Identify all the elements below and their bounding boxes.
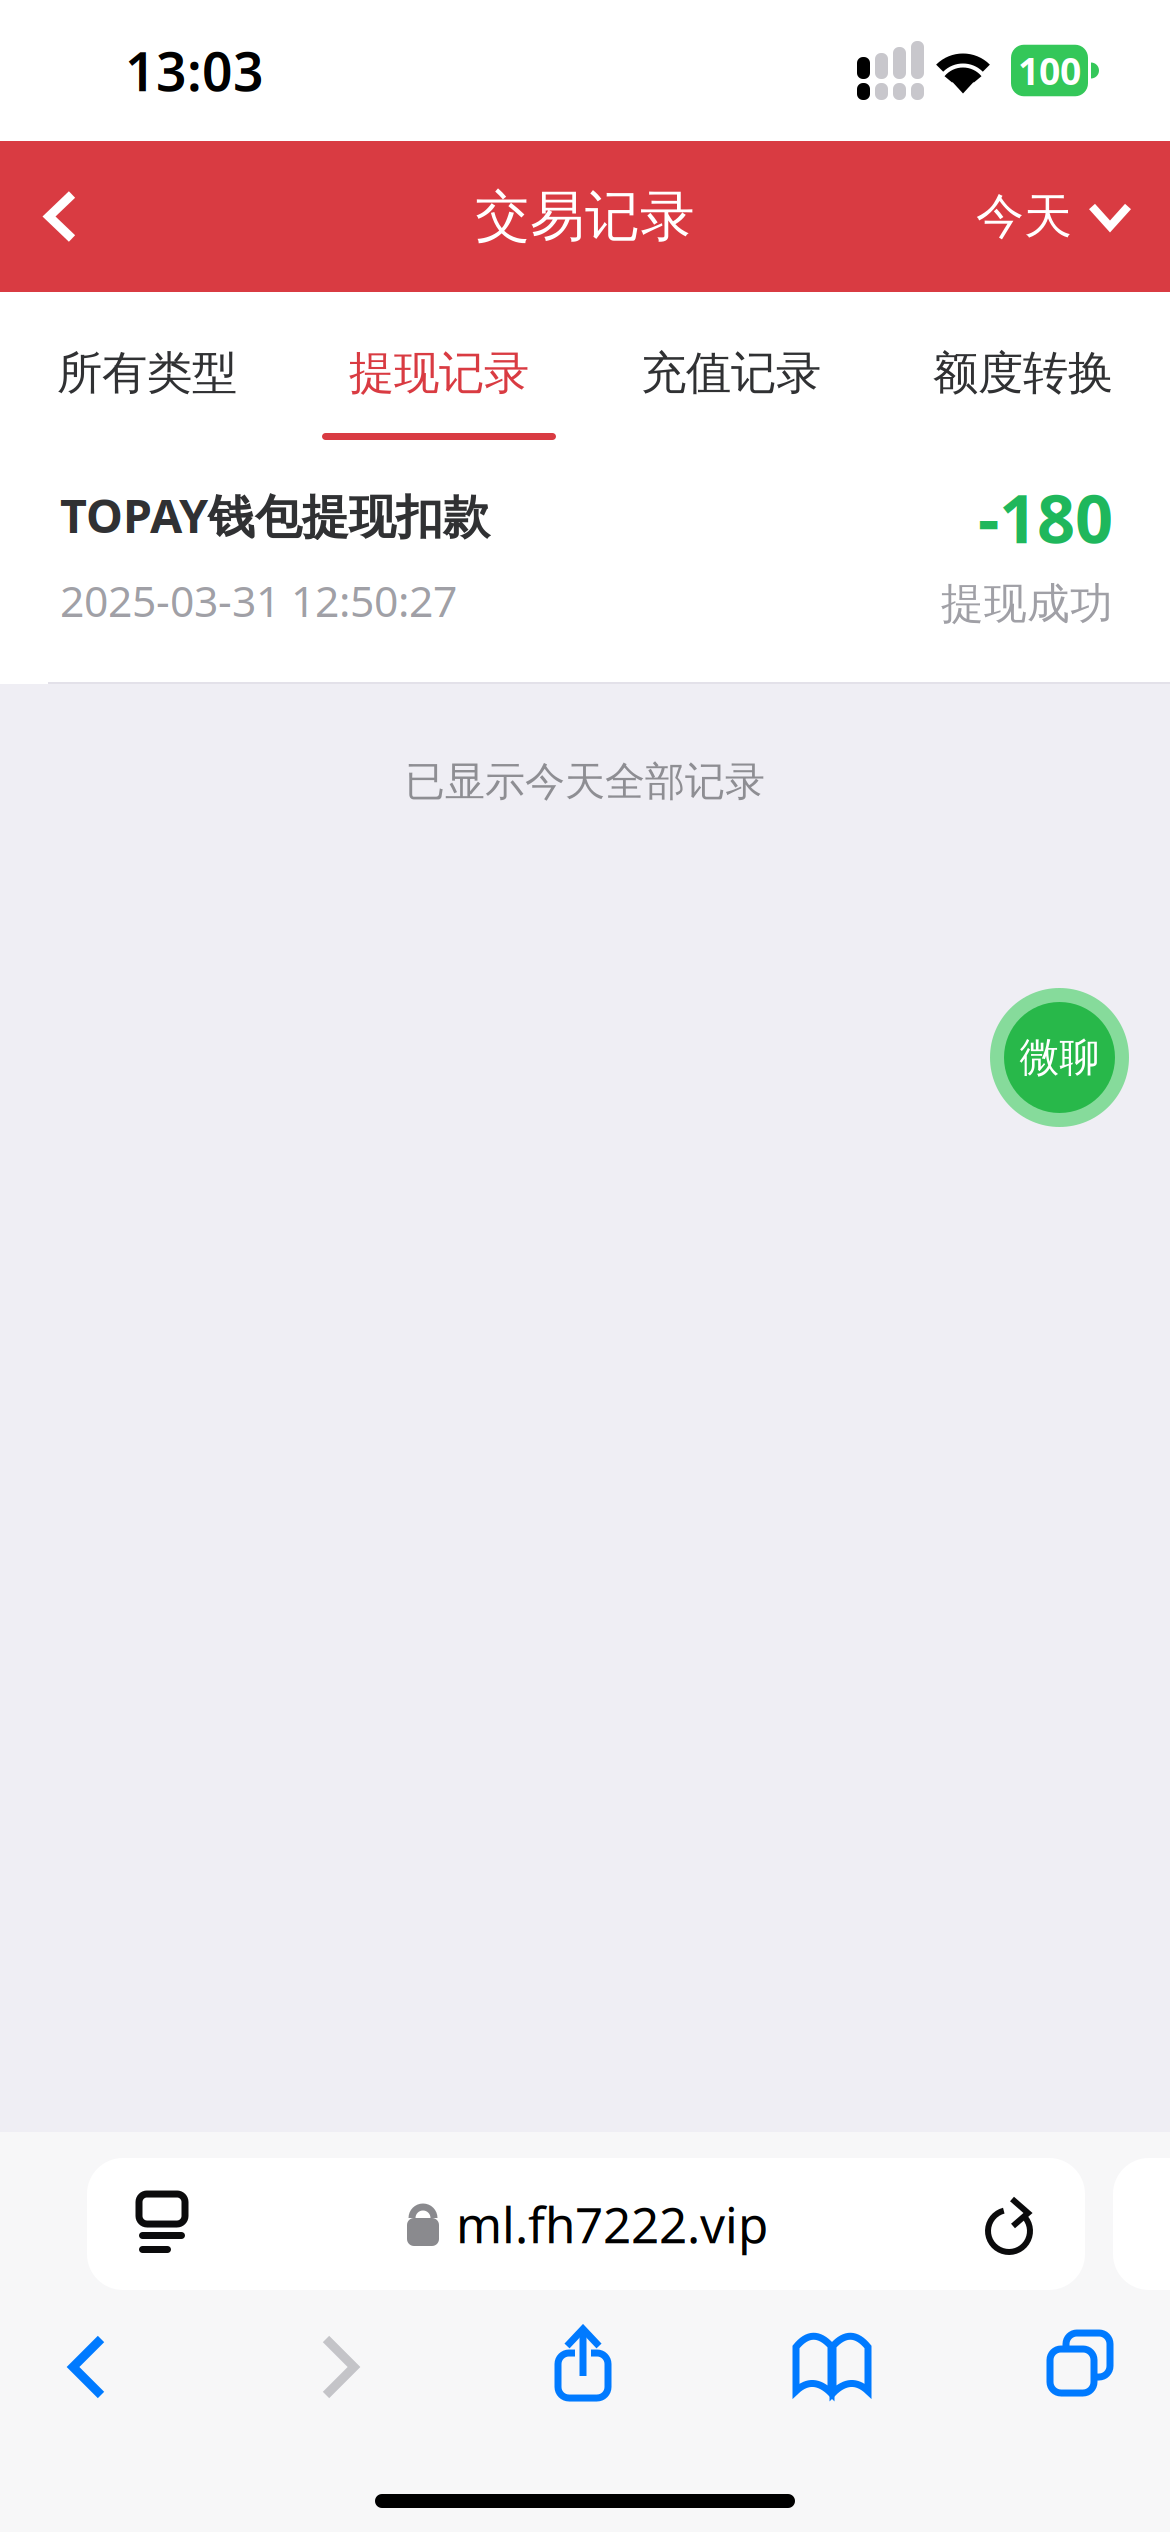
staticText: -180 (978, 473, 1113, 561)
staticText: 今天 (976, 187, 1072, 246)
staticText: 2025-03-31 12:50:27 (60, 572, 457, 629)
button[interactable]: 额度转换 (877, 292, 1169, 460)
staticText: ml.fh7222.vip (456, 2191, 768, 2257)
button[interactable]: Page settings (87, 2158, 223, 2290)
staticText: 所有类型 (57, 345, 237, 401)
button[interactable]: 今天 (946, 147, 1170, 286)
staticText: 提现记录 (349, 345, 529, 401)
button[interactable]: Tabs (1030, 2313, 1130, 2413)
staticText: 100 (1018, 46, 1081, 95)
button[interactable]: Back (0, 150, 118, 282)
button[interactable]: TOPAY钱包提现扣款 (0, 460, 1170, 684)
staticText: 13:03 (125, 35, 264, 106)
button[interactable]: Back (45, 2314, 129, 2420)
button[interactable]: Bookmarks (776, 2314, 888, 2416)
button[interactable]: Forward (298, 2314, 382, 2420)
staticText: 充值记录 (641, 345, 821, 401)
staticText: 微聊 (1019, 1033, 1099, 1082)
button[interactable]: Reload (951, 2159, 1085, 2289)
staticText: 提现成功 (941, 577, 1113, 630)
button[interactable]: Share (538, 2308, 628, 2420)
staticText: 额度转换 (933, 345, 1113, 401)
staticText: 交易记录 (475, 183, 695, 250)
button[interactable]: 充值记录 (585, 292, 877, 460)
button[interactable]: 所有类型 (1, 292, 293, 460)
button[interactable]: 提现记录 (293, 292, 585, 460)
button[interactable]: 微聊 (990, 988, 1129, 1127)
staticText: TOPAY钱包提现扣款 (60, 484, 490, 546)
staticText: 已显示今天全部记录 (405, 757, 765, 806)
